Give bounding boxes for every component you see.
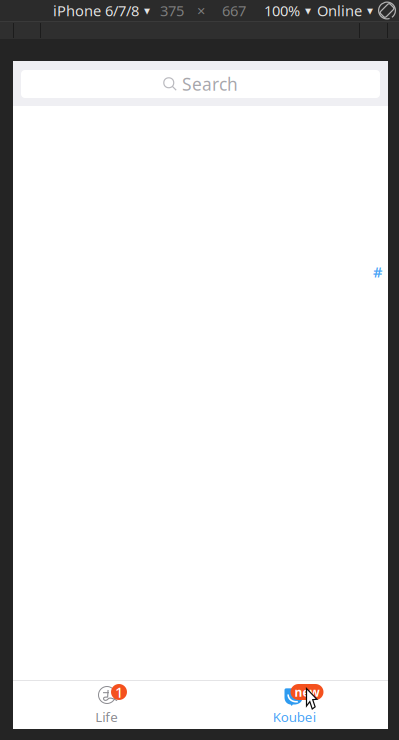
staticText: new xyxy=(294,684,319,700)
staticText: Online xyxy=(317,1,362,20)
button[interactable]: 100% xyxy=(260,0,315,21)
staticText: Life xyxy=(95,708,118,726)
staticText: 1 xyxy=(115,682,123,702)
staticText: × xyxy=(197,1,205,20)
staticText: 100% xyxy=(264,1,300,20)
button[interactable]: new xyxy=(200,681,388,729)
button[interactable]: 1 xyxy=(13,681,200,729)
button[interactable]: Online xyxy=(313,0,377,21)
button[interactable]: Rotate device xyxy=(376,0,398,21)
staticText: # xyxy=(373,262,382,281)
staticText: 667 xyxy=(222,1,246,20)
staticText: 375 xyxy=(160,1,184,20)
staticText: ▾ xyxy=(144,4,150,17)
staticText: iPhone 6/7/8 xyxy=(53,1,139,20)
staticText: Search xyxy=(182,72,238,95)
staticText: Koubei xyxy=(273,708,316,726)
staticText: ▾ xyxy=(367,4,373,17)
button[interactable]: iPhone 6/7/8 xyxy=(49,0,154,21)
staticText: ▾ xyxy=(305,4,311,17)
